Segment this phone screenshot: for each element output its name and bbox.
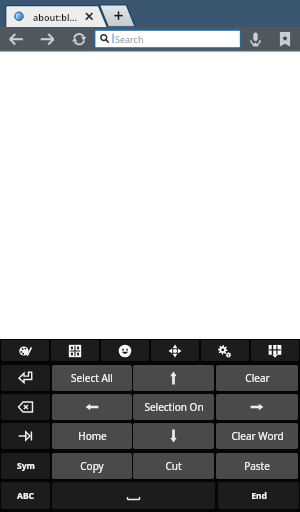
staticText: Clear (245, 371, 270, 385)
button[interactable]: Cut (133, 453, 214, 479)
staticText: Home (78, 429, 107, 443)
staticText: Sym (17, 460, 35, 472)
button[interactable]: Reload (67, 27, 91, 50)
button[interactable]: Space (52, 482, 215, 509)
staticText: Search (115, 33, 144, 45)
button[interactable]: Move keyboard (151, 340, 199, 361)
button[interactable]: Enter (1, 365, 50, 391)
button[interactable]: Emoji (101, 340, 149, 361)
staticText: Cut (165, 459, 182, 473)
button[interactable]: Paste (216, 453, 298, 479)
button[interactable]: Search field (94, 29, 241, 48)
staticText: Select All (71, 371, 113, 385)
button[interactable]: Clear (216, 365, 298, 391)
button[interactable]: Number pad (51, 340, 99, 361)
button[interactable]: Home (52, 423, 132, 449)
button[interactable]: about:bl… (6, 5, 99, 27)
staticText: Clear Word (231, 429, 284, 443)
button[interactable]: Up (133, 365, 214, 391)
button[interactable]: Bookmark (273, 27, 297, 50)
button[interactable]: ABC (1, 482, 50, 509)
button[interactable]: Back (4, 27, 28, 50)
button[interactable]: Sym (1, 453, 50, 479)
button[interactable]: Keyboard layout (251, 340, 299, 361)
button[interactable]: Copy (52, 453, 132, 479)
button[interactable]: Settings (201, 340, 249, 361)
button[interactable]: Left (52, 394, 132, 420)
button[interactable]: Clear Word (216, 423, 298, 449)
button[interactable]: Forward (35, 27, 59, 50)
button[interactable]: Tab (1, 423, 50, 449)
staticText: about:bl… (33, 11, 77, 23)
button[interactable]: Select All (52, 365, 132, 391)
button[interactable]: End (218, 482, 299, 509)
staticText: Paste (244, 459, 270, 473)
button[interactable]: Backspace (1, 394, 50, 420)
staticText: ABC (17, 490, 34, 502)
button[interactable]: Right (216, 394, 298, 420)
button[interactable]: Down (133, 423, 214, 449)
staticText: Selection On (144, 400, 204, 414)
button[interactable]: Theme (1, 340, 49, 361)
button[interactable]: Selection On (133, 394, 214, 420)
staticText: End (251, 490, 267, 502)
staticText: Copy (80, 459, 104, 473)
button[interactable]: Voice search (244, 27, 268, 50)
